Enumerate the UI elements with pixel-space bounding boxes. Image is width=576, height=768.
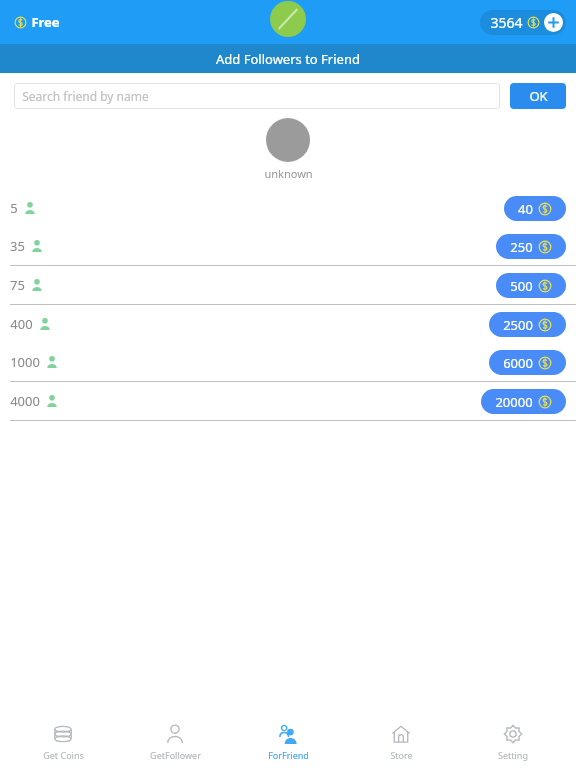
staticText: 250 [510,238,533,256]
button[interactable]: 1000 [0,343,576,381]
button[interactable]: 250 [496,234,566,259]
staticText: 2500 [503,316,533,334]
staticText: 4000 [10,392,40,410]
button[interactable]: 500 [496,273,566,298]
staticText: Free [31,13,60,31]
button[interactable]: Search friend by name [14,83,500,109]
button[interactable]: 20000 [481,389,566,414]
staticText: GetFollower [150,749,201,761]
staticText: Store [390,749,413,761]
button[interactable]: 2500 [489,312,566,337]
button[interactable]: Free [10,9,64,35]
staticText: 500 [510,277,533,295]
button[interactable]: Get Coins [13,718,113,765]
button[interactable]: 35 [0,227,576,265]
staticText: 3564 [490,13,523,32]
staticText: 75 [10,276,25,294]
button[interactable]: Store [351,718,451,765]
staticText: 400 [10,315,33,333]
staticText: 5 [10,199,18,217]
button[interactable]: 400 [0,305,576,343]
staticText: Search friend by name [22,88,149,104]
staticText: unknown [264,166,313,181]
staticText: 6000 [503,354,533,372]
staticText: 40 [518,200,533,218]
button[interactable]: App logo [270,1,306,37]
button[interactable]: 6000 [489,350,566,375]
button[interactable]: ForFriend [238,718,338,765]
staticText: 1000 [10,353,40,371]
staticText: Add Followers to Friend [216,50,360,68]
button[interactable]: 40 [504,196,566,221]
button[interactable]: 4000 [0,382,576,420]
button[interactable]: OK [510,83,566,109]
button[interactable]: 3564 [480,10,566,35]
button[interactable]: GetFollower [125,718,225,765]
staticText: 35 [10,237,25,255]
staticText: 20000 [495,393,533,411]
button[interactable]: 5 [0,189,576,227]
button[interactable]: Setting [463,718,563,765]
staticText: OK [529,87,548,105]
staticText: ForFriend [268,749,309,761]
staticText: Setting [498,749,528,761]
staticText: Get Coins [43,749,84,761]
button[interactable]: 75 [0,266,576,304]
button[interactable]: Friend avatar [266,118,310,162]
